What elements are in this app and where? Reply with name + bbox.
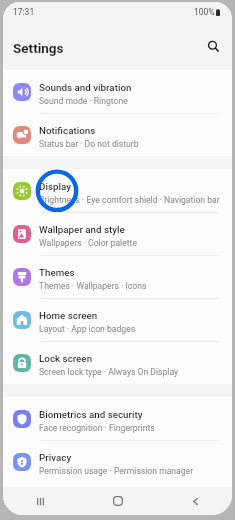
- staticText: Screen lock type · Always On Display: [39, 367, 179, 377]
- staticText: Sound mode · Ringtone: [39, 96, 128, 106]
- button[interactable]: Notifications: [3, 113, 232, 156]
- staticText: Wallpapers · Color palette: [39, 238, 137, 248]
- staticText: Layout · App icon badges: [39, 324, 136, 334]
- staticText: Sounds and vibration: [39, 82, 132, 93]
- staticText: Permission usage · Permission manager: [39, 466, 194, 476]
- staticText: Display: [39, 181, 71, 192]
- staticText: 100%: [194, 7, 215, 17]
- button[interactable]: Themes: [3, 255, 232, 298]
- staticText: Themes: [39, 267, 75, 278]
- staticText: Face recognition · Fingerprints: [39, 423, 155, 433]
- button[interactable]: Wallpaper and style: [3, 212, 232, 255]
- staticText: Status bar · Do not disturb: [39, 139, 139, 149]
- staticText: Privacy: [39, 452, 72, 463]
- staticText: Themes · Wallpapers · Icons: [39, 281, 147, 291]
- button[interactable]: Recents: [27, 488, 53, 514]
- button[interactable]: Privacy: [3, 440, 232, 483]
- button[interactable]: Biometrics and security: [3, 397, 232, 440]
- staticText: Notifications: [39, 125, 96, 136]
- button[interactable]: Home screen: [3, 298, 232, 341]
- button[interactable]: Home: [105, 488, 131, 514]
- staticText: Brightness · Eye comfort shield · Naviga…: [39, 195, 220, 205]
- staticText: Biometrics and security: [39, 409, 143, 420]
- button[interactable]: Sounds and vibration: [3, 70, 232, 113]
- staticText: 17:31: [13, 7, 35, 17]
- staticText: Settings: [13, 40, 64, 56]
- button[interactable]: Lock screen: [3, 341, 232, 384]
- button[interactable]: Back: [182, 488, 208, 514]
- staticText: Wallpaper and style: [39, 224, 125, 235]
- button[interactable]: Search: [201, 34, 225, 58]
- button[interactable]: Display: [3, 169, 232, 212]
- staticText: Lock screen: [39, 353, 93, 364]
- staticText: Home screen: [39, 310, 98, 321]
